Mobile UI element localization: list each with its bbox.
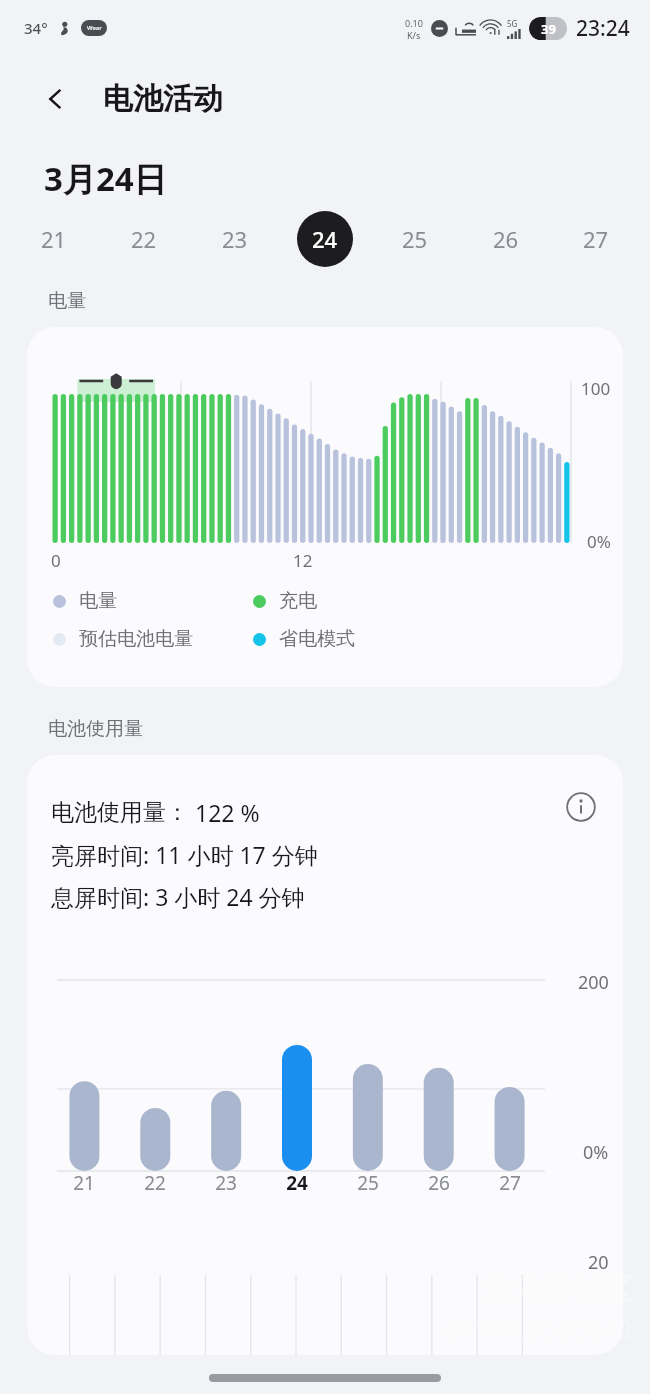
staticText: K/s bbox=[407, 29, 421, 41]
button[interactable]: 100 bbox=[27, 327, 623, 687]
staticText: 39 bbox=[541, 20, 556, 38]
button[interactable]: 22 bbox=[116, 211, 172, 267]
staticText: Wear bbox=[87, 24, 102, 32]
staticText: 22 bbox=[131, 224, 157, 254]
staticText: 22 bbox=[144, 1170, 166, 1196]
staticText: 息屏时间: 3 小时 24 分钟 bbox=[51, 881, 305, 912]
staticText: 0% bbox=[583, 1140, 609, 1165]
staticText: 26 bbox=[428, 1170, 450, 1196]
button[interactable]: 26 bbox=[478, 211, 534, 267]
button[interactable]: 21 bbox=[26, 211, 82, 267]
staticText: 21 bbox=[73, 1170, 95, 1196]
staticText: 25 bbox=[402, 224, 428, 254]
staticText: 122 % bbox=[195, 797, 260, 828]
button[interactable]: 23 bbox=[207, 211, 263, 267]
staticText: 3月24日 bbox=[44, 156, 167, 201]
staticText: 34° bbox=[24, 18, 48, 38]
staticText: 24 bbox=[312, 224, 338, 254]
staticText: 100 bbox=[581, 377, 611, 400]
staticText: 12 bbox=[293, 549, 313, 572]
staticText: 电池使用量： bbox=[51, 798, 189, 827]
staticText: 充电 bbox=[279, 589, 317, 613]
staticText: 0% bbox=[587, 530, 611, 553]
staticText: 27 bbox=[499, 1170, 521, 1196]
button[interactable]: Info bbox=[561, 787, 601, 827]
staticText: 0 bbox=[51, 549, 61, 572]
staticText: 26 bbox=[493, 224, 519, 254]
staticText: 0.10 bbox=[405, 17, 423, 29]
staticText: 20 bbox=[588, 1250, 609, 1275]
staticText: 电量 bbox=[48, 289, 86, 313]
staticText: 25 bbox=[357, 1170, 379, 1196]
staticText: 电池活动 bbox=[103, 80, 223, 118]
button[interactable]: 电池使用量： bbox=[27, 755, 623, 1355]
staticText: 电量 bbox=[79, 589, 117, 613]
staticText: 电池使用量 bbox=[48, 717, 143, 741]
staticText: 21 bbox=[41, 224, 67, 254]
staticText: 23:24 bbox=[576, 14, 630, 43]
staticText: 27 bbox=[583, 224, 609, 254]
button[interactable]: 25 bbox=[387, 211, 443, 267]
staticText: 23 bbox=[215, 1170, 237, 1196]
button[interactable]: Back bbox=[30, 73, 82, 125]
staticText: 23 bbox=[222, 224, 248, 254]
staticText: @WWL8580040 bbox=[442, 1311, 632, 1346]
staticText: 亮屏时间: 11 小时 17 分钟 bbox=[51, 839, 318, 870]
staticText: 200 bbox=[578, 970, 609, 995]
button[interactable]: 24 bbox=[297, 211, 353, 267]
button[interactable]: 27 bbox=[568, 211, 624, 267]
staticText: 5G bbox=[507, 18, 518, 29]
staticText: 预估电池电量 bbox=[79, 627, 193, 651]
staticText: 24 bbox=[286, 1170, 308, 1196]
staticText: 省电模式 bbox=[279, 627, 355, 651]
